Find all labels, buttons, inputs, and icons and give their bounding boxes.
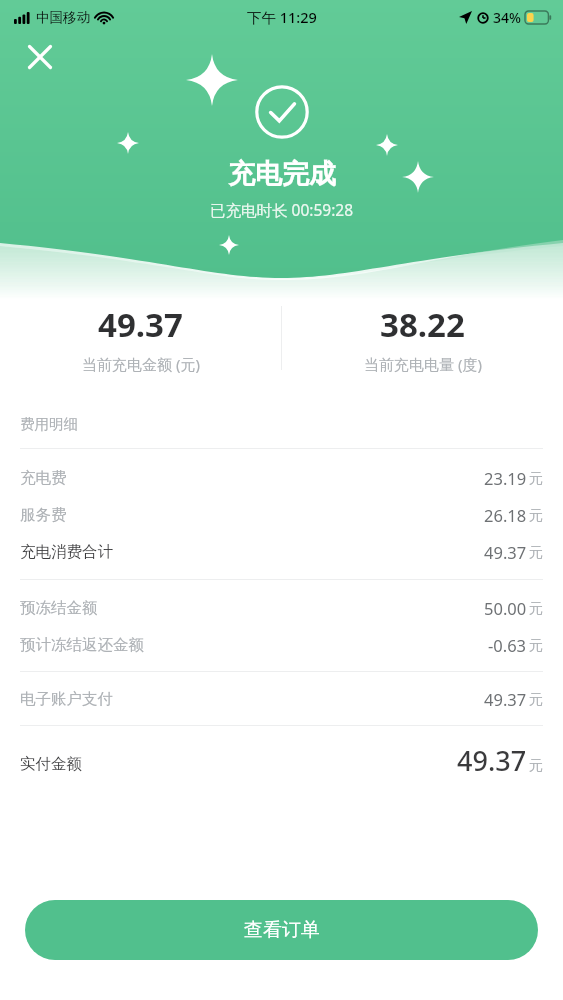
staticText: 49.37 [98,302,183,347]
staticText: 38.22 [380,302,465,347]
staticText: 充电费 [20,468,67,488]
button[interactable]: 充电费 [0,459,563,496]
staticText: 50.00 [484,597,527,619]
staticText: 实付金额 [20,754,82,774]
staticText: 充电完成 [228,157,336,191]
staticText: 电子账户支付 [20,689,113,709]
button[interactable]: 预冻结金额 [0,589,563,626]
staticText: 费用明细 [20,415,78,433]
staticText: 34% [493,8,521,27]
staticText: 元 [529,600,543,618]
staticText: 预冻结金额 [20,598,98,618]
button[interactable]: 查看订单 [25,900,538,960]
staticText: 已充电时长 00:59:28 [210,199,354,220]
button[interactable]: 电子账户支付 [0,680,563,717]
staticText: 26.18 [484,504,527,526]
staticText: 元 [529,637,543,655]
button[interactable]: 充电消费合计 [0,533,563,570]
staticText: 元 [529,544,543,562]
staticText: 当前充电金额 (元) [82,354,200,374]
staticText: 49.37 [484,688,527,710]
button[interactable]: Close [22,39,58,75]
button[interactable]: 服务费 [0,496,563,533]
staticText: 当前充电电量 (度) [364,354,482,374]
staticText: 充电消费合计 [20,542,113,562]
staticText: 元 [529,507,543,525]
staticText: 查看订单 [244,918,320,942]
staticText: 预计冻结返还金额 [20,635,144,655]
staticText: 中国移动 [36,9,90,26]
staticText: 元 [529,691,543,709]
staticText: 元 [529,470,543,488]
staticText: 49.37 [484,541,527,563]
staticText: 服务费 [20,505,67,525]
staticText: 下午 11:29 [247,7,317,27]
staticText: 元 [529,757,543,775]
button[interactable]: 预计冻结返还金额 [0,626,563,663]
staticText: -0.63 [488,634,527,656]
staticText: 23.19 [484,467,527,489]
staticText: 49.37 [457,742,527,779]
